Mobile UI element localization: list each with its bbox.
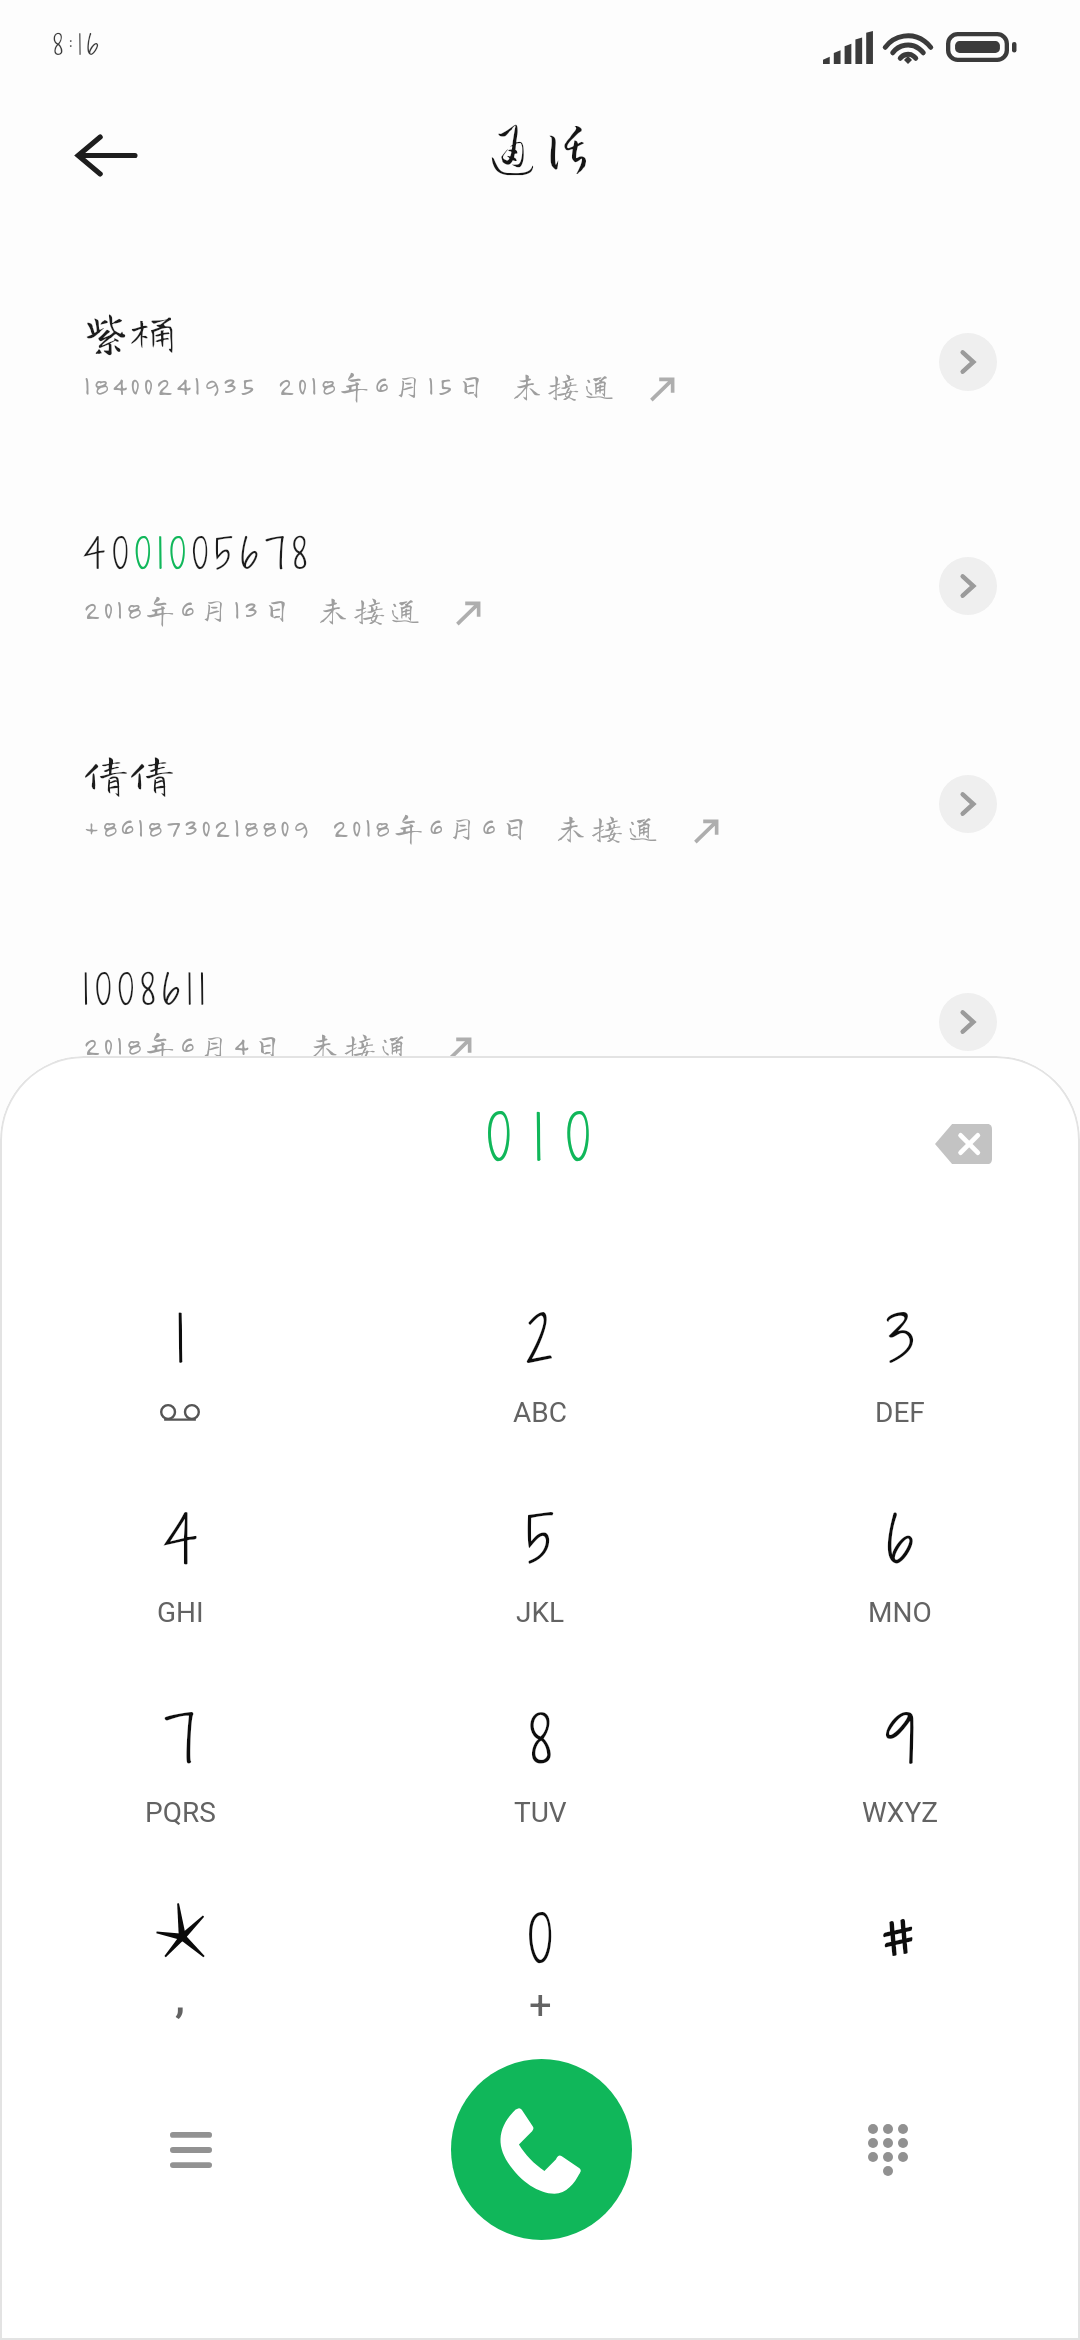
button[interactable]: 倩倩 bbox=[0, 738, 1080, 938]
staticText: 1 bbox=[176, 1294, 185, 1384]
button[interactable]: Menu bbox=[141, 2100, 241, 2200]
staticText: 2018年6月13日 未接通 bbox=[84, 594, 426, 625]
button[interactable]: Back bbox=[68, 117, 144, 193]
staticText: 0 bbox=[528, 1894, 553, 1984]
button[interactable]: Key 9 bbox=[750, 1690, 1050, 1850]
staticText: 4 bbox=[163, 1494, 198, 1584]
button[interactable]: Key 7 bbox=[30, 1690, 330, 1850]
staticText: 4001005678 bbox=[83, 524, 314, 582]
staticText: 9 bbox=[885, 1694, 916, 1784]
button[interactable]: 1008611 bbox=[0, 956, 1080, 1156]
staticText: 7 bbox=[164, 1694, 196, 1784]
staticText: MNO bbox=[868, 1596, 932, 1629]
staticText: 8 bbox=[529, 1694, 552, 1784]
button[interactable]: Key * bbox=[30, 1890, 330, 2050]
staticText: , bbox=[176, 1975, 184, 2022]
staticText: PQRS bbox=[145, 1796, 216, 1829]
staticText: 18400241935 2018年6月15日 未接通 bbox=[84, 370, 620, 401]
button[interactable]: Key 3 bbox=[750, 1290, 1050, 1450]
button[interactable]: Backspace bbox=[915, 1104, 1012, 1184]
staticText: 010 bbox=[487, 1094, 614, 1181]
button[interactable]: Call bbox=[451, 2059, 632, 2240]
staticText: 3 bbox=[886, 1294, 915, 1384]
staticText: DEF bbox=[875, 1396, 925, 1429]
button[interactable]: Key 0 bbox=[390, 1890, 690, 2050]
button[interactable]: Key # bbox=[750, 1890, 1050, 2050]
button[interactable]: 4001005678 bbox=[0, 520, 1080, 720]
staticText: TUV bbox=[514, 1796, 567, 1829]
staticText: 通话 bbox=[485, 120, 596, 174]
staticText: 6 bbox=[886, 1494, 914, 1584]
staticText: 倩倩 bbox=[83, 751, 175, 797]
staticText: WXYZ bbox=[862, 1796, 938, 1829]
button[interactable]: Key 8 bbox=[390, 1690, 690, 1850]
button[interactable]: Dialpad bbox=[838, 2100, 938, 2200]
staticText: 8:16 bbox=[53, 25, 104, 64]
button[interactable]: Key 2 bbox=[390, 1290, 690, 1450]
button[interactable]: Key 5 bbox=[390, 1490, 690, 1650]
staticText: # bbox=[878, 1888, 923, 1992]
staticText: 紫桶 bbox=[83, 309, 175, 355]
staticText: 2 bbox=[526, 1294, 554, 1384]
staticText: GHI bbox=[157, 1596, 204, 1629]
button[interactable]: 紫桶 bbox=[0, 296, 1080, 496]
staticText: 2018年6月4日 未接通 bbox=[84, 1030, 417, 1061]
staticText: + bbox=[529, 1982, 552, 2029]
staticText: JKL bbox=[516, 1596, 565, 1629]
button[interactable]: Key 6 bbox=[750, 1490, 1050, 1650]
button[interactable]: Key 1 bbox=[30, 1290, 330, 1450]
staticText: ABC bbox=[513, 1396, 567, 1429]
staticText: +8618730218809 2018年6月6日 未接通 bbox=[84, 812, 664, 843]
staticText: 5 bbox=[526, 1494, 555, 1584]
button[interactable]: Key 4 bbox=[30, 1490, 330, 1650]
staticText: 1008611 bbox=[83, 960, 212, 1018]
